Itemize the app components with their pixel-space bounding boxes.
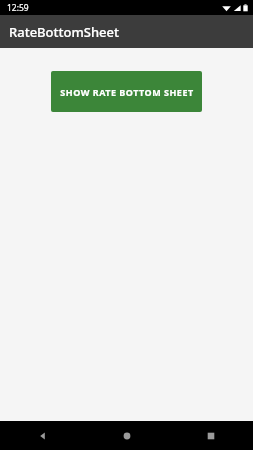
staticText: RateBottomSheet — [9, 23, 119, 41]
staticText: SHOW RATE BOTTOM SHEET — [60, 86, 194, 98]
button[interactable]: SHOW RATE BOTTOM SHEET — [51, 71, 202, 112]
staticText: 12:59 — [7, 2, 29, 14]
button[interactable]: Back — [0, 421, 85, 450]
button[interactable]: Home — [85, 421, 169, 450]
button[interactable]: Recent apps — [169, 421, 253, 450]
